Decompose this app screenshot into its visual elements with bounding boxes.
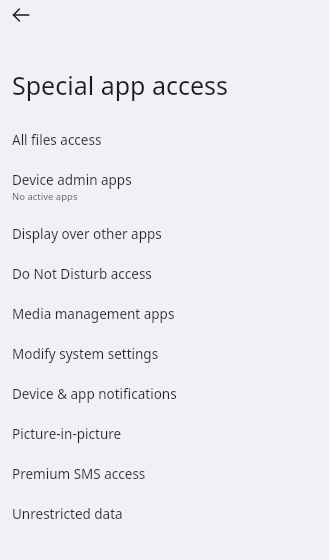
staticText: Picture-in-picture bbox=[12, 425, 122, 443]
staticText: Special app access bbox=[12, 68, 228, 102]
button[interactable]: Device admin apps bbox=[0, 160, 329, 214]
button[interactable]: Do Not Disturb access bbox=[0, 254, 329, 294]
staticText: Unrestricted data bbox=[12, 505, 123, 523]
staticText: Display over other apps bbox=[12, 225, 162, 243]
button[interactable]: Unrestricted data bbox=[0, 494, 329, 534]
staticText: All files access bbox=[12, 131, 102, 149]
button[interactable]: Back bbox=[4, 0, 38, 30]
staticText: Premium SMS access bbox=[12, 465, 146, 483]
button[interactable]: Modify system settings bbox=[0, 334, 329, 374]
button[interactable]: Media management apps bbox=[0, 294, 329, 334]
staticText: No active apps bbox=[12, 190, 78, 203]
button[interactable]: Device & app notifications bbox=[0, 374, 329, 414]
button[interactable]: Premium SMS access bbox=[0, 454, 329, 494]
staticText: Media management apps bbox=[12, 305, 175, 323]
button[interactable]: Picture-in-picture bbox=[0, 414, 329, 454]
button[interactable]: All files access bbox=[0, 120, 329, 160]
button[interactable]: Display over other apps bbox=[0, 214, 329, 254]
staticText: Device admin apps bbox=[12, 171, 132, 189]
staticText: Device & app notifications bbox=[12, 385, 177, 403]
staticText: Do Not Disturb access bbox=[12, 265, 152, 283]
staticText: Modify system settings bbox=[12, 345, 159, 363]
